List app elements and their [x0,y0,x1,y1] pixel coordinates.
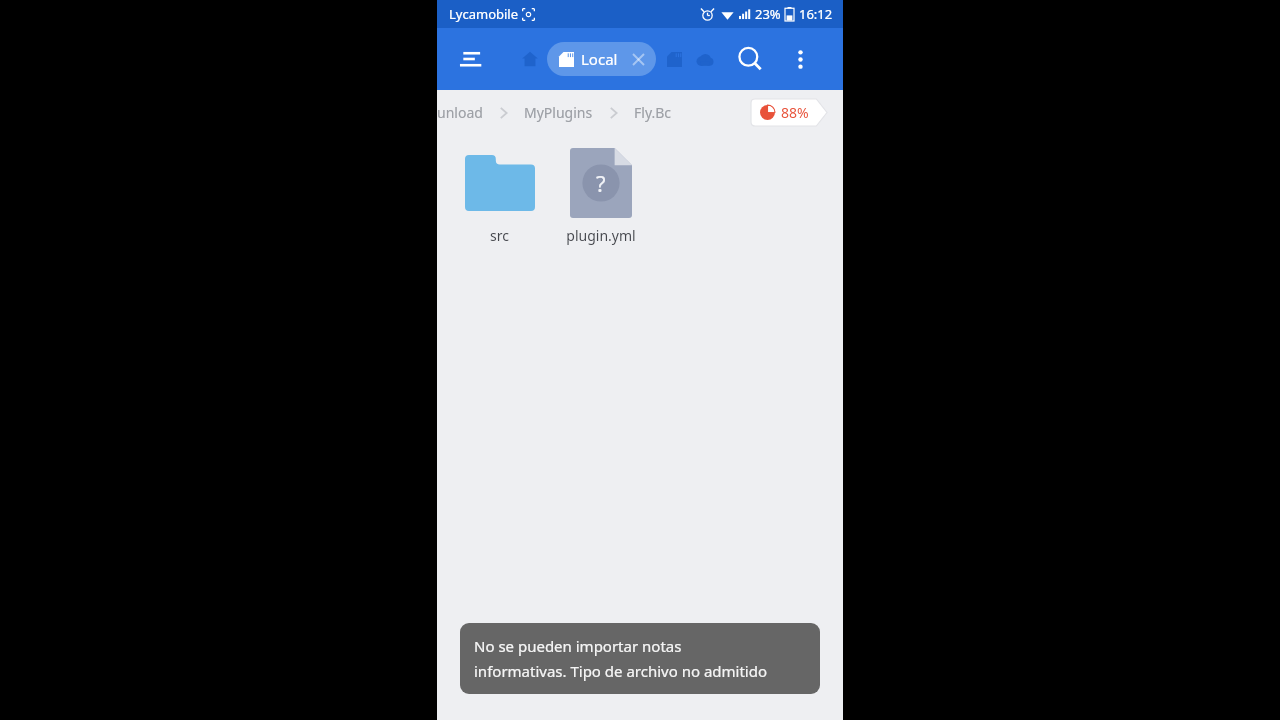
staticText: 16:12 [799,5,833,23]
button[interactable]: 88% [751,99,827,126]
button[interactable]: Menu [449,37,493,81]
staticText: 23% [755,5,781,23]
button[interactable]: Search [727,36,773,82]
button[interactable]: Local [547,42,656,76]
staticText: unload [437,103,483,122]
button[interactable]: Home [513,42,547,76]
button[interactable]: Fly.Bc [634,103,672,122]
staticText: plugin.yml [566,226,636,245]
staticText: ? [596,168,606,198]
button[interactable]: More options [779,38,821,80]
staticText: src [490,226,509,245]
staticText: MyPlugins [524,103,593,122]
button[interactable]: unload [437,103,483,122]
staticText: No se pueden importar notas [474,636,682,656]
staticText: Fly.Bc [634,103,672,122]
button[interactable]: Cloud storage [689,44,719,74]
staticText: 88% [781,103,809,122]
staticText: Lycamobile [449,5,519,23]
button[interactable]: ? [550,142,651,249]
button[interactable]: SD card [659,44,689,74]
button[interactable]: src [449,142,550,249]
staticText: informativas. Tipo de archivo no admitid… [474,661,768,681]
button[interactable]: MyPlugins [524,103,593,122]
staticText: Local [581,49,618,69]
